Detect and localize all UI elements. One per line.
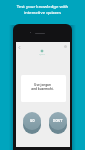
button[interactable]: Use joegan and buzemohi.: [21, 75, 66, 102]
staticText: Use joegan and buzemohi.: [31, 83, 54, 91]
staticText: GO: [30, 119, 35, 123]
button[interactable]: More options: [62, 43, 68, 49]
staticText: DON'T: [53, 119, 63, 123]
button[interactable]: Back: [15, 43, 23, 51]
staticText: Test your knowledge with interactive qui…: [4, 3, 81, 15]
button[interactable]: DON'T: [49, 112, 67, 134]
staticText: Quizz: [39, 53, 45, 56]
button[interactable]: GO: [23, 112, 41, 134]
